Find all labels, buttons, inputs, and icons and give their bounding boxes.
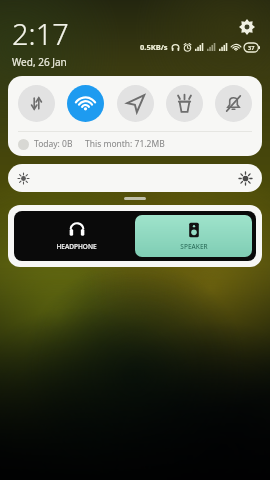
staticText: 0.5KB/s <box>140 42 168 52</box>
button[interactable]: SPEAKER <box>135 215 252 257</box>
button[interactable]: Settings <box>234 14 260 40</box>
button[interactable]: Flashlight <box>166 85 203 122</box>
staticText: HEADPHONE <box>56 242 97 251</box>
staticText: 2:17 <box>12 14 69 53</box>
staticText: Wed, 26 Jan <box>12 55 67 69</box>
button[interactable]: Wi-Fi <box>67 85 104 122</box>
button[interactable]: Mobile data <box>18 85 55 122</box>
button[interactable]: HEADPHONE <box>18 215 135 257</box>
button[interactable]: Silent mode <box>215 85 252 122</box>
staticText: Today: 0B <box>34 138 73 150</box>
button[interactable]: Location <box>117 85 154 122</box>
button[interactable]: Brightness <box>8 164 262 192</box>
staticText: 37 <box>248 44 255 51</box>
staticText: SPEAKER <box>180 242 208 251</box>
staticText: This month: 71.2MB <box>85 138 165 150</box>
button[interactable]: Today: 0B <box>8 132 262 156</box>
